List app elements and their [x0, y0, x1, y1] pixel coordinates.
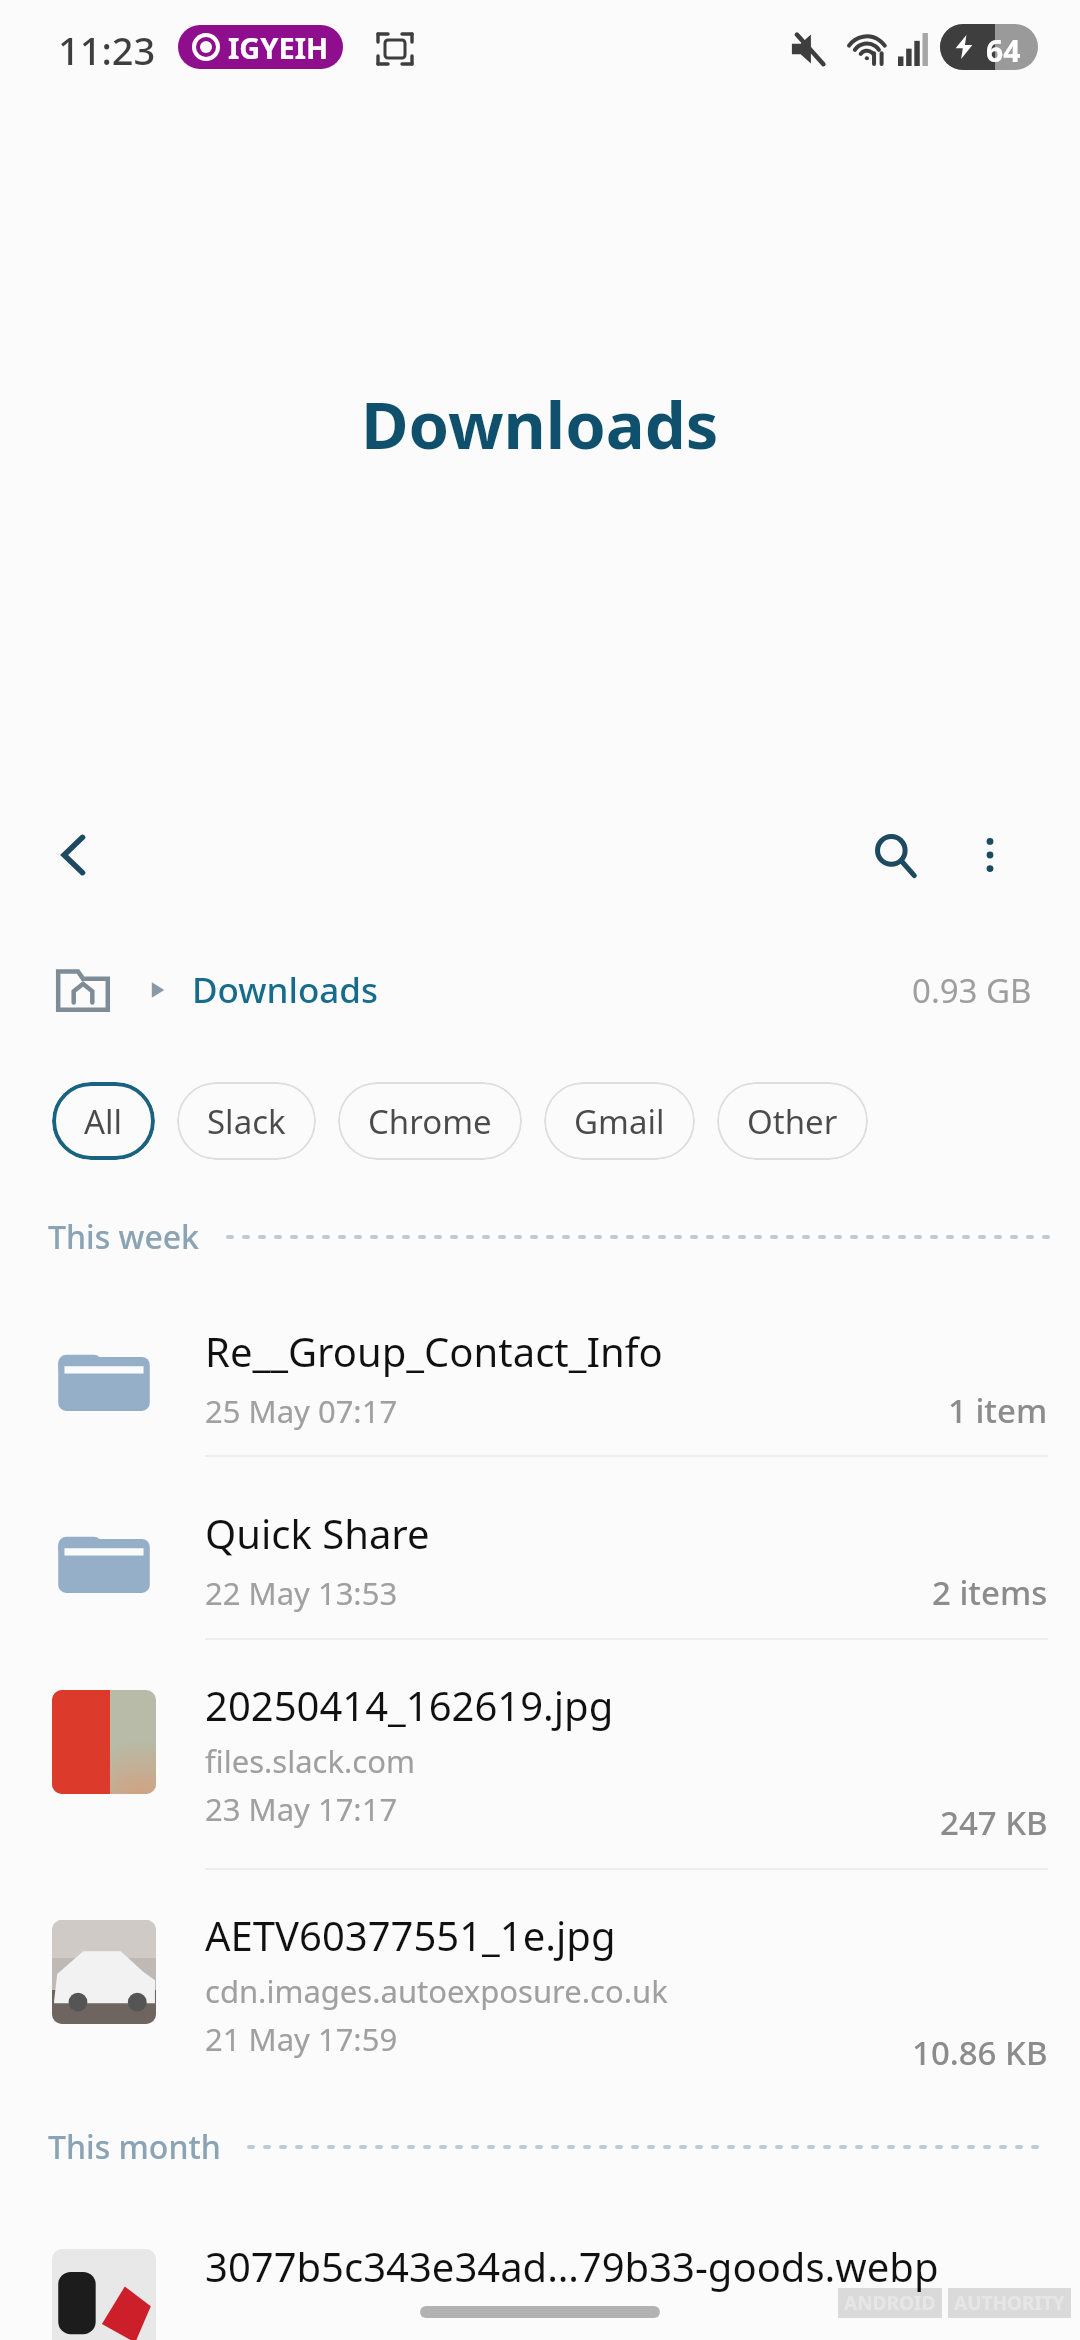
button[interactable]: Search: [850, 810, 940, 900]
staticText: 23 May 17:17: [205, 1788, 398, 1830]
button[interactable]: Gmail: [544, 1082, 695, 1160]
staticText: Re__Group_Contact_Info: [205, 1324, 663, 1378]
staticText: Slack: [207, 1099, 286, 1144]
staticText: 22 May 13:53: [205, 1572, 398, 1614]
staticText: 0.93 GB: [912, 968, 1032, 1013]
staticText: This week: [48, 1215, 200, 1259]
staticText: IGYEIH: [228, 28, 329, 67]
staticText: Chrome: [368, 1099, 492, 1144]
button[interactable]: Re__Group_Contact_Info: [0, 1300, 1080, 1455]
staticText: 25 May 07:17: [205, 1390, 398, 1432]
button[interactable]: 20250414_162619.jpg: [0, 1660, 1080, 1865]
button[interactable]: Chrome: [338, 1082, 522, 1160]
staticText: 11:23: [58, 24, 156, 76]
button[interactable]: All: [52, 1082, 155, 1160]
staticText: 1 item: [948, 1388, 1048, 1433]
button[interactable]: AETV60377551_1e.jpg: [0, 1890, 1080, 2095]
staticText: This month: [48, 2125, 221, 2169]
staticText: 21 May 17:59: [205, 2018, 398, 2060]
button[interactable]: Other: [717, 1082, 868, 1160]
staticText: 10.86 KB: [912, 2030, 1048, 2075]
staticText: Quick Share: [205, 1506, 430, 1560]
button[interactable]: Downloads: [192, 966, 379, 1014]
button[interactable]: 3077b5c343e34ad…79b33-goods.webp: [0, 2215, 1080, 2340]
button[interactable]: Back: [30, 810, 120, 900]
button[interactable]: More options: [945, 810, 1035, 900]
staticText: 2 items: [932, 1570, 1048, 1615]
button[interactable]: Slack: [177, 1082, 316, 1160]
staticText: AUTHORITY: [954, 2290, 1065, 2316]
staticText: 3077b5c343e34ad…79b33-goods.webp: [205, 2239, 939, 2293]
button[interactable]: Quick Share: [0, 1482, 1080, 1637]
staticText: Gmail: [574, 1099, 665, 1144]
staticText: 64: [986, 30, 1021, 70]
staticText: files.slack.com: [205, 1740, 415, 1782]
staticText: Downloads: [361, 380, 719, 469]
staticText: 20250414_162619.jpg: [205, 1678, 614, 1732]
staticText: cdn.images.autoexposure.co.uk: [205, 1970, 668, 2012]
staticText: AETV60377551_1e.jpg: [205, 1908, 616, 1962]
staticText: Other: [747, 1099, 838, 1144]
staticText: All: [84, 1099, 123, 1144]
staticText: ANDROID: [844, 2290, 936, 2316]
button[interactable]: Home folder: [52, 959, 114, 1021]
staticText: Downloads: [192, 966, 379, 1014]
staticText: 247 KB: [940, 1800, 1048, 1845]
